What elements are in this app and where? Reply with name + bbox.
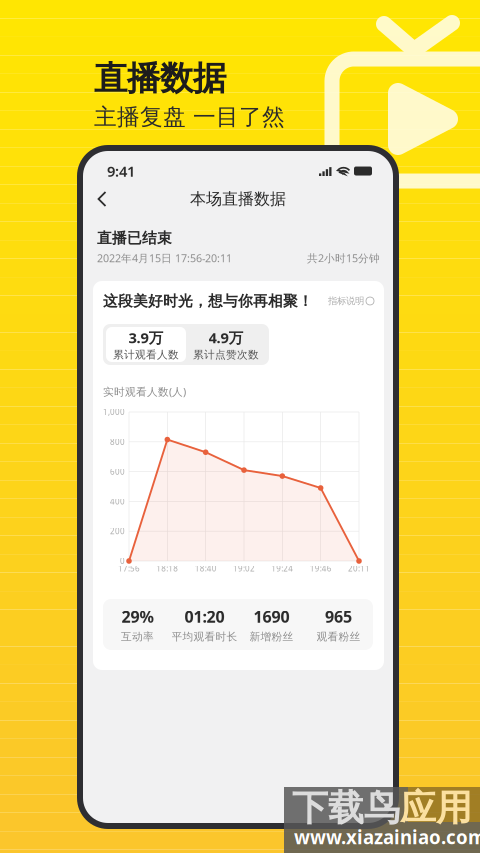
staticText: 19:24 [271, 563, 293, 574]
staticText: 实时观看人数(人) [103, 384, 186, 399]
button[interactable]: Back [89, 183, 115, 215]
staticText: www.xiazainiao.com [294, 825, 480, 849]
staticText: 指标说明 [328, 295, 364, 307]
button[interactable]: 3.9万 [106, 327, 186, 362]
staticText: 直播数据 [94, 58, 226, 99]
staticText: 这段美好时光，想与你再相聚！ [103, 292, 313, 310]
staticText: 18:40 [195, 563, 217, 574]
staticText: 互动率 [121, 630, 154, 643]
staticText: 965 [325, 606, 352, 627]
button[interactable]: 4.9万 [186, 327, 266, 362]
button[interactable]: 指标说明 [328, 295, 374, 307]
staticText: 主播复盘 一目了然 [94, 103, 285, 131]
staticText: 累计观看人数 [113, 348, 179, 361]
staticText: 19:02 [233, 563, 255, 574]
staticText: 平均观看时长 [171, 630, 237, 643]
staticText: 17:56 [118, 563, 140, 574]
staticText: 共2小时15分钟 [307, 251, 380, 265]
staticText: 累计点赞次数 [193, 348, 259, 361]
staticText: 200 [110, 526, 125, 536]
staticText: 18:18 [156, 563, 178, 574]
staticText: 01:20 [184, 606, 224, 627]
staticText: 29% [121, 606, 153, 627]
staticText: 2022年4月15日 17:56-20:11 [97, 251, 232, 265]
staticText: 观看粉丝 [316, 630, 360, 643]
staticText: 新增粉丝 [249, 630, 293, 643]
staticText: 4.9万 [208, 328, 243, 347]
staticText: 600 [110, 466, 125, 477]
staticText: 0 [120, 556, 125, 566]
staticText: 1690 [253, 606, 289, 627]
staticText: 下载鸟 [292, 786, 400, 830]
staticText: 19:46 [310, 563, 332, 574]
staticText: 20:11 [348, 563, 370, 574]
staticText: 本场直播数据 [190, 189, 286, 209]
staticText: 直播已结束 [97, 229, 172, 247]
staticText: 1,000 [103, 407, 125, 417]
staticText: 9:41 [107, 161, 135, 181]
staticText: 400 [110, 496, 125, 507]
staticText: 800 [110, 436, 125, 447]
staticText: 3.9万 [128, 328, 163, 347]
staticText: 应用 [400, 786, 472, 830]
